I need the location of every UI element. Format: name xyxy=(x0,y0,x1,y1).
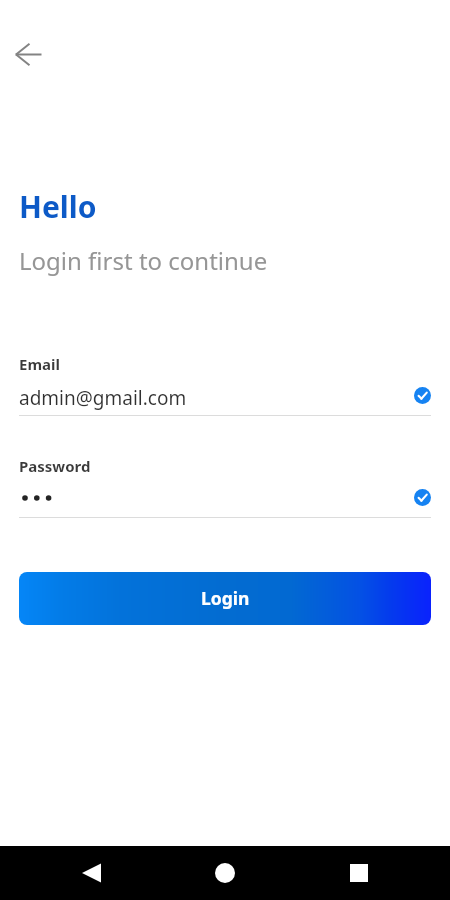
button[interactable]: Home xyxy=(199,846,251,900)
button[interactable]: Valid xyxy=(414,387,431,404)
button[interactable]: Back xyxy=(66,846,118,900)
staticText: admin@gmail.com xyxy=(19,385,187,411)
button[interactable]: Email xyxy=(19,352,431,418)
staticText: Email xyxy=(19,354,60,374)
staticText: Hello xyxy=(19,186,97,227)
button[interactable]: Back xyxy=(8,37,48,77)
staticText: Login xyxy=(201,586,250,610)
button[interactable]: Login xyxy=(19,572,431,625)
button[interactable]: Recent apps xyxy=(333,846,385,900)
staticText: Login first to continue xyxy=(19,244,268,277)
staticText: Password xyxy=(19,456,91,476)
button[interactable]: Valid xyxy=(414,489,431,506)
button[interactable]: Password xyxy=(19,454,431,520)
